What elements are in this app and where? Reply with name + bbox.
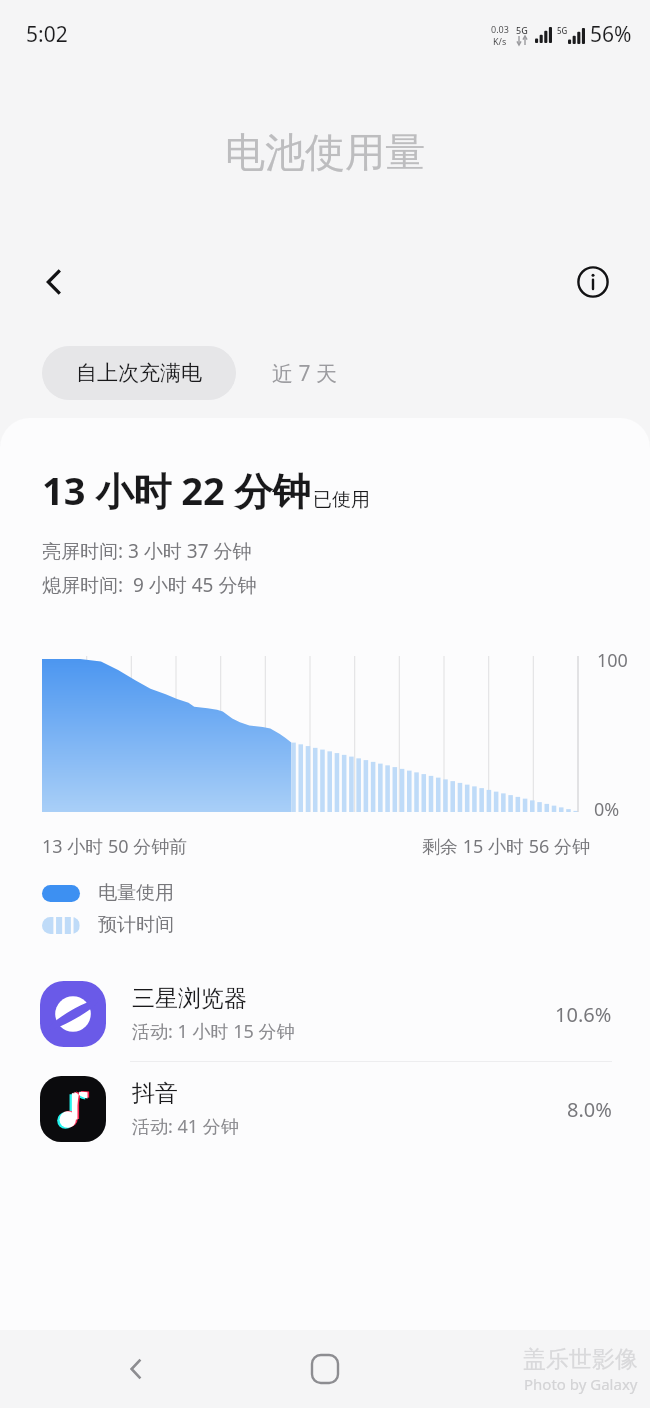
staticText: 8.0% [567,1096,612,1123]
staticText: 熄屏时间: 9 小时 45 分钟 [42,572,257,598]
staticText: 已使用 [313,488,370,512]
button[interactable]: 自上次充满电 [42,346,236,400]
button[interactable]: 抖音 [0,1062,650,1156]
staticText: 13 小时 50 分钟前 [42,834,188,859]
staticText: 抖音 [132,1079,178,1108]
staticText: 三星浏览器 [132,984,247,1013]
staticText: 电池使用量 [34,127,616,177]
button[interactable]: 近 7 天 [236,345,373,402]
staticText: 10.6% [555,1001,612,1028]
button[interactable]: Back [26,254,82,310]
button[interactable]: Home [297,1341,353,1397]
staticText: Photo by Galaxy [524,1374,638,1394]
staticText: 亮屏时间: 3 小时 37 分钟 [42,538,252,564]
staticText: 活动: 41 分钟 [132,1114,239,1139]
staticText: 5G [516,24,528,36]
staticText: 剩余 15 小时 56 分钟 [422,834,590,859]
staticText: K/s [493,35,507,47]
staticText: 100 [597,648,628,673]
staticText: 盖乐世影像 [523,1345,638,1374]
staticText: 0.03 [491,23,509,35]
staticText: 近 7 天 [272,359,337,388]
staticText: 13 小时 22 分钟 [42,464,311,516]
button[interactable]: Information [566,255,620,309]
staticText: 0% [594,797,620,822]
staticText: 电量使用 [98,881,174,905]
staticText: 活动: 1 小时 15 分钟 [132,1019,295,1044]
staticText: 5G [557,25,568,36]
button[interactable]: Back [108,1341,164,1397]
staticText: 56% [590,20,632,49]
staticText: 5:02 [26,20,68,49]
staticText: 自上次充满电 [76,360,202,386]
button[interactable]: 三星浏览器 [0,967,650,1062]
staticText: 预计时间 [98,913,174,937]
